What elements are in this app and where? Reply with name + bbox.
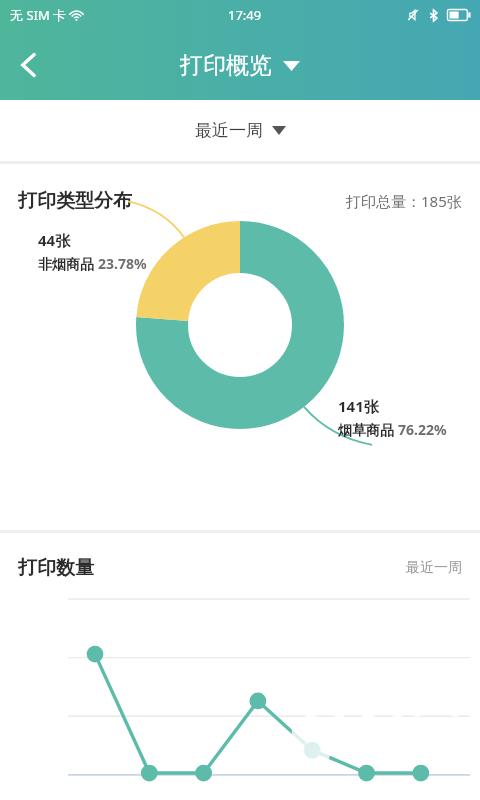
staticText: 打印概览 bbox=[180, 51, 272, 80]
staticText: 141张 bbox=[338, 396, 379, 416]
staticText: 44张 bbox=[38, 230, 71, 250]
staticText: 烟草商品 bbox=[338, 420, 398, 439]
button[interactable]: 打印概览 bbox=[174, 45, 306, 86]
button[interactable]: 最近一周 bbox=[181, 111, 300, 150]
staticText: 最近一周 bbox=[406, 559, 462, 577]
staticText: 23.78% bbox=[98, 254, 147, 273]
staticText: 打印总量：185张 bbox=[346, 191, 462, 211]
staticText: 最近一周 bbox=[195, 120, 263, 141]
staticText: 打印数量 bbox=[18, 556, 94, 580]
staticText: 17:49 bbox=[228, 6, 262, 24]
staticText: 非烟商品 bbox=[38, 254, 98, 273]
staticText: 打印类型分布 bbox=[18, 189, 132, 213]
staticText: 无 SIM 卡 bbox=[10, 6, 67, 24]
staticText: 76.22% bbox=[398, 420, 447, 439]
button[interactable]: Back bbox=[0, 36, 58, 94]
